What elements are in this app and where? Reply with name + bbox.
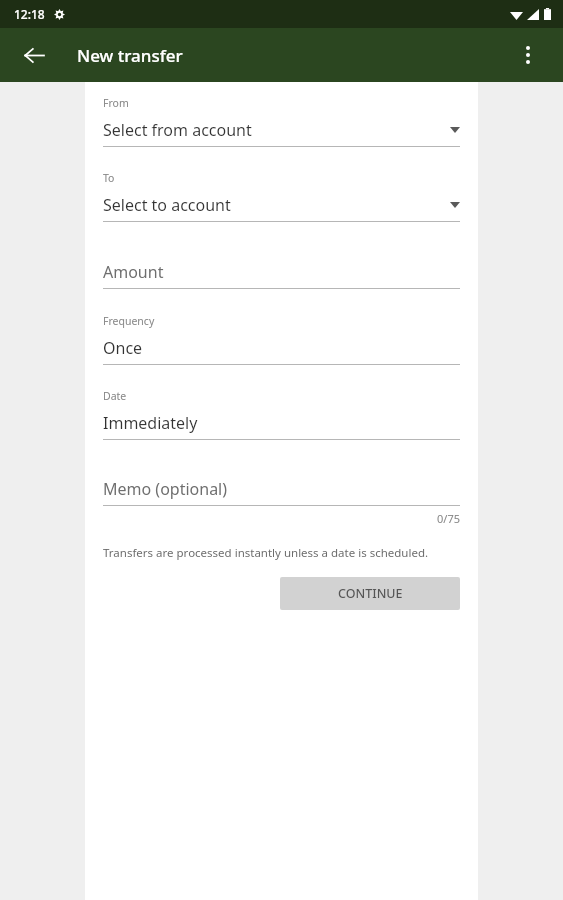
staticText: Date: [103, 389, 127, 403]
button[interactable]: Date: [103, 389, 460, 440]
staticText: Once: [103, 337, 143, 359]
button[interactable]: Memo (optional): [103, 478, 460, 506]
staticText: Memo (optional): [103, 478, 228, 500]
staticText: Frequency: [103, 314, 155, 328]
staticText: Amount: [103, 261, 164, 283]
staticText: Select to account: [103, 194, 231, 216]
button[interactable]: More options: [504, 31, 552, 79]
button[interactable]: To: [103, 171, 460, 222]
button[interactable]: Frequency: [103, 314, 460, 365]
button[interactable]: Amount: [103, 261, 460, 289]
staticText: Transfers are processed instantly unless…: [103, 545, 429, 561]
staticText: Immediately: [103, 412, 198, 434]
staticText: 12:18: [14, 6, 45, 22]
button[interactable]: Back: [10, 31, 58, 79]
staticText: 0/75: [103, 511, 460, 526]
staticText: CONTINUE: [338, 585, 403, 602]
staticText: From: [103, 96, 129, 110]
staticText: To: [103, 171, 115, 185]
button[interactable]: From: [103, 96, 460, 147]
staticText: New transfer: [77, 44, 183, 67]
button[interactable]: CONTINUE: [280, 577, 460, 610]
staticText: Select from account: [103, 119, 252, 141]
